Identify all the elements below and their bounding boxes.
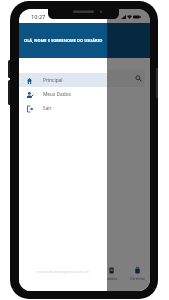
button[interactable]: Pedidos xyxy=(98,263,124,291)
staticText: Sair xyxy=(43,105,52,112)
button[interactable]: Buscar xyxy=(46,263,72,291)
button[interactable]: Sair xyxy=(19,101,107,115)
staticText: www.sitedaempresa.com.br xyxy=(19,269,107,274)
staticText: Principal xyxy=(43,77,63,84)
staticText: 10:27 xyxy=(31,13,46,21)
staticText: Carrinho xyxy=(130,276,145,281)
button[interactable]: Buscar xyxy=(24,70,145,87)
staticText: Pedidos xyxy=(104,276,118,281)
button[interactable]: Ofertas xyxy=(72,263,98,291)
button[interactable]: Carrinho xyxy=(124,263,150,291)
button[interactable]: Início xyxy=(19,263,46,291)
staticText: Meus Dados xyxy=(43,91,71,98)
other: Buscar xyxy=(135,75,142,82)
staticText: OLÁ, NOME E SOBRENOME DO USUÁRIO xyxy=(24,38,103,43)
button[interactable]: Meus Dados xyxy=(19,87,107,101)
button[interactable]: Principal xyxy=(19,73,107,87)
staticText: Categorias xyxy=(24,90,49,96)
